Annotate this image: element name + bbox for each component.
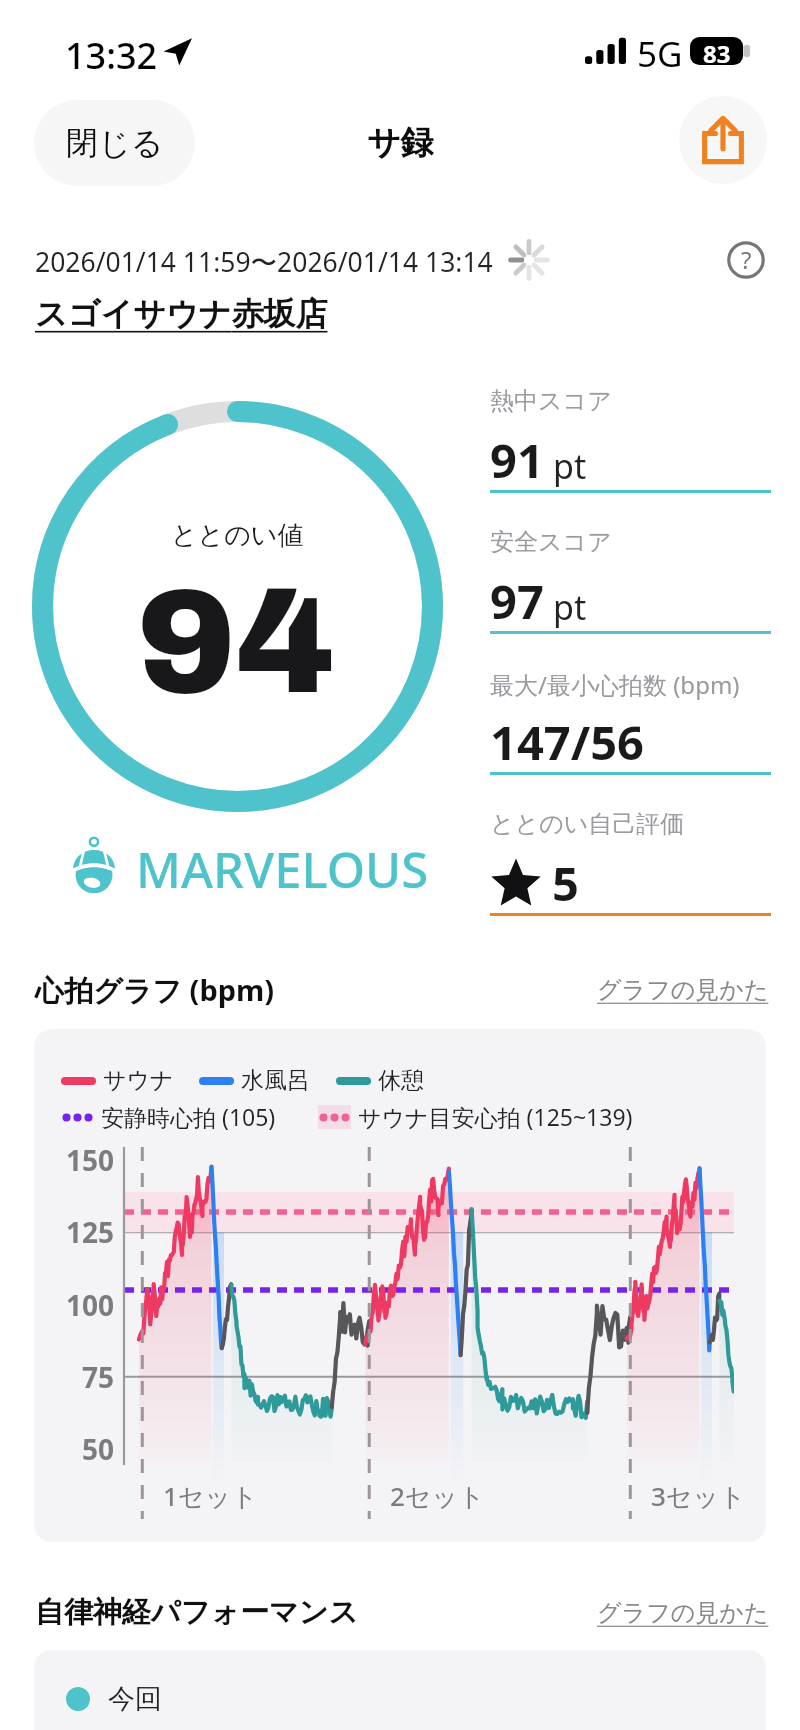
staticText: 5G bbox=[637, 30, 683, 78]
staticText: 休憩 bbox=[378, 1066, 424, 1095]
staticText: 1セット bbox=[163, 1478, 258, 1514]
staticText: 最大/最小心拍数 (bpm) bbox=[490, 668, 740, 701]
staticText: ととのい自己評価 bbox=[490, 809, 685, 839]
staticText: ととのい値 bbox=[171, 519, 304, 552]
staticText: 心拍グラフ (bpm) bbox=[35, 970, 275, 1010]
staticText: 75 bbox=[82, 1358, 115, 1396]
staticText: pt bbox=[553, 443, 587, 489]
staticText: 50 bbox=[82, 1430, 115, 1468]
staticText: 自律神経パフォーマンス bbox=[35, 1594, 359, 1631]
staticText: 2セット bbox=[390, 1478, 485, 1514]
button[interactable]: スゴイサウナ赤坂店 bbox=[35, 294, 328, 334]
button[interactable]: グラフの見かた bbox=[597, 975, 769, 1005]
staticText: MARVELOUS bbox=[136, 836, 429, 903]
staticText: 熱中スコア bbox=[490, 386, 612, 416]
staticText: pt bbox=[553, 584, 587, 630]
staticText: 150 bbox=[66, 1141, 115, 1179]
staticText: グラフの見かた bbox=[597, 975, 769, 1005]
staticText: ? bbox=[741, 243, 752, 276]
staticText: グラフの見かた bbox=[597, 1598, 769, 1628]
staticText: スゴイサウナ赤坂店 bbox=[35, 294, 328, 334]
staticText: 今回 bbox=[108, 1682, 162, 1716]
staticText: 水風呂 bbox=[241, 1066, 310, 1095]
button[interactable]: Share bbox=[679, 96, 767, 184]
staticText: 83 bbox=[703, 37, 731, 65]
staticText: サウナ目安心拍 (125~139) bbox=[358, 1101, 633, 1132]
staticText: 3セット bbox=[651, 1478, 746, 1514]
staticText: 94 bbox=[137, 562, 335, 723]
staticText: 5 bbox=[552, 851, 579, 915]
staticText: 閉じる bbox=[66, 123, 164, 163]
staticText: 安全スコア bbox=[490, 527, 612, 557]
staticText: 13:32 bbox=[65, 31, 158, 80]
staticText: 安静時心拍 (105) bbox=[101, 1101, 276, 1132]
staticText: 125 bbox=[66, 1213, 115, 1251]
staticText: サ録 bbox=[367, 122, 434, 164]
button[interactable]: Help bbox=[727, 241, 765, 279]
staticText: 91 bbox=[490, 428, 544, 492]
staticText: サウナ bbox=[103, 1066, 174, 1095]
button[interactable]: グラフの見かた bbox=[597, 1598, 769, 1628]
staticText: 100 bbox=[66, 1286, 115, 1324]
staticText: 97 bbox=[490, 569, 544, 633]
button[interactable]: 閉じる bbox=[34, 100, 195, 186]
staticText: 147/56 bbox=[490, 710, 644, 774]
staticText: 2026/01/14 11:59〜2026/01/14 13:14 bbox=[35, 244, 493, 280]
